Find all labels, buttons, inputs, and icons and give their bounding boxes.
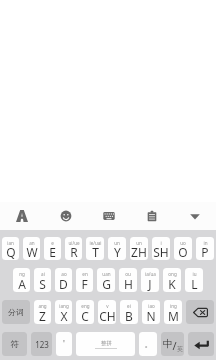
staticText: en <box>82 271 88 277</box>
button[interactable]: ao <box>55 268 72 292</box>
staticText: X <box>60 308 68 324</box>
staticText: uan <box>102 271 111 277</box>
staticText: G <box>102 276 111 292</box>
button[interactable]: ia/ua <box>141 268 159 292</box>
staticText: un <box>114 240 120 246</box>
button[interactable]: ang <box>34 300 51 324</box>
staticText: ' <box>63 338 65 350</box>
staticText: L <box>191 276 198 292</box>
button[interactable]: ou <box>119 268 137 292</box>
staticText: iao <box>148 303 155 309</box>
staticText: in <box>203 240 208 246</box>
button[interactable]: Space <box>76 332 135 356</box>
staticText: R <box>70 244 78 260</box>
button[interactable]: Font style <box>0 202 44 230</box>
staticText: iu <box>192 271 197 277</box>
staticText: J <box>148 276 152 292</box>
button[interactable]: in <box>196 237 214 260</box>
button[interactable]: 。 <box>139 332 157 356</box>
staticText: T <box>92 244 99 260</box>
button[interactable]: Chinese English toggle <box>161 332 184 356</box>
staticText: 中 <box>163 337 173 350</box>
button[interactable]: un <box>108 237 126 260</box>
staticText: 。 <box>144 339 153 350</box>
staticText: ZH <box>131 244 147 260</box>
button[interactable]: eng <box>76 300 94 324</box>
staticText: CH <box>99 308 116 324</box>
button[interactable]: ing <box>164 300 182 324</box>
staticText: ou <box>125 271 131 277</box>
staticText: ai <box>41 271 45 277</box>
staticText: M <box>168 308 179 324</box>
button[interactable]: Backspace <box>186 300 214 324</box>
staticText: 符 <box>10 339 19 350</box>
staticText: K <box>168 276 176 292</box>
staticText: ui/ue <box>68 240 80 246</box>
staticText: Q <box>6 244 16 260</box>
staticText: 整拼 <box>101 340 112 347</box>
button[interactable]: ui/ue <box>65 237 82 260</box>
staticText: ng <box>19 271 25 277</box>
button[interactable]: Keyboard layout <box>87 202 130 230</box>
button[interactable]: ian <box>2 237 19 260</box>
staticText: iang <box>59 303 69 309</box>
staticText: H <box>124 276 133 292</box>
staticText: / <box>172 338 177 353</box>
button[interactable]: ng <box>13 268 30 292</box>
staticText: N <box>146 308 156 324</box>
staticText: E <box>49 244 56 260</box>
button[interactable]: iu <box>185 268 203 292</box>
staticText: 123 <box>35 339 49 350</box>
staticText: Z <box>39 308 46 324</box>
staticText: Y <box>114 244 121 260</box>
button[interactable]: iang <box>55 300 72 324</box>
staticText: W <box>26 244 38 260</box>
button[interactable]: i <box>152 237 170 260</box>
button[interactable]: Enter <box>188 332 214 356</box>
button[interactable]: Clipboard <box>130 202 173 230</box>
staticText: eng <box>81 303 90 309</box>
button[interactable]: 123 <box>31 332 52 356</box>
button[interactable]: e <box>44 237 61 260</box>
button[interactable]: uo <box>174 237 192 260</box>
button[interactable]: ' <box>56 332 72 356</box>
button[interactable]: 符 <box>2 332 27 356</box>
button[interactable]: ong <box>163 268 181 292</box>
button[interactable]: iao <box>142 300 160 324</box>
staticText: SH <box>153 244 169 260</box>
staticText: an <box>29 240 35 246</box>
staticText: ing <box>170 303 177 309</box>
staticText: e <box>51 240 54 246</box>
staticText: ei <box>127 303 131 309</box>
staticText: ong <box>168 271 177 277</box>
staticText: ie/uai <box>89 240 102 246</box>
staticText: D <box>59 276 68 292</box>
button[interactable]: ie/uai <box>86 237 104 260</box>
button[interactable]: en <box>76 268 93 292</box>
staticText: F <box>81 276 88 292</box>
staticText: ang <box>38 303 47 309</box>
staticText: A <box>18 276 26 292</box>
staticText: C <box>81 308 89 324</box>
button[interactable]: v <box>98 300 116 324</box>
button[interactable]: Emoji <box>44 202 87 230</box>
staticText: ia/ua <box>145 271 156 277</box>
staticText: P <box>201 244 209 260</box>
staticText: ian <box>7 240 14 246</box>
button[interactable]: uan <box>97 268 115 292</box>
staticText: B <box>125 308 133 324</box>
button[interactable]: ai <box>34 268 51 292</box>
staticText: 英 <box>177 345 183 353</box>
button[interactable]: 分词 <box>2 300 30 324</box>
staticText: uo <box>180 240 186 246</box>
button[interactable]: Hide keyboard <box>173 202 216 230</box>
staticText: O <box>178 244 188 260</box>
staticText: ao <box>61 271 67 277</box>
staticText: i <box>160 240 162 246</box>
staticText: S <box>39 276 46 292</box>
button[interactable]: an <box>23 237 40 260</box>
button[interactable]: un <box>130 237 148 260</box>
staticText: un <box>136 240 142 246</box>
button[interactable]: ei <box>120 300 138 324</box>
staticText: 分词 <box>8 307 24 317</box>
